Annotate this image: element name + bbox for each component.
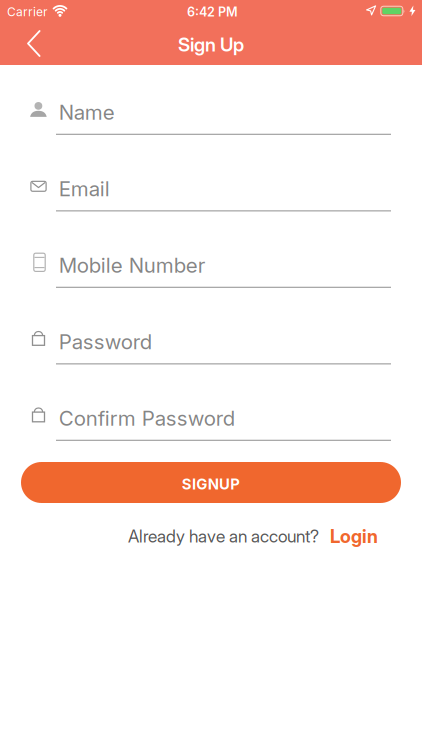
staticText: Carrier [7,4,48,19]
staticText: Email [59,176,110,201]
button[interactable]: SIGNUP [21,462,401,503]
textField[interactable]: Name [0,100,422,135]
textField[interactable]: Password [0,329,422,364]
staticText: Password [59,329,152,354]
staticText: Mobile Number [59,253,206,278]
staticText: Name [59,100,115,125]
staticText: Confirm Password [59,406,235,431]
textField[interactable]: Mobile Number [0,253,422,288]
button[interactable]: Login [330,525,378,547]
staticText: Sign Up [178,33,244,56]
staticText: Already have an account? [128,526,319,547]
textField[interactable]: Confirm Password [0,406,422,441]
staticText: SIGNUP [182,475,240,493]
button[interactable]: Back [0,30,53,57]
staticText: Login [330,525,378,547]
staticText: 6:42 PM [187,4,238,20]
textField[interactable]: Email [0,176,422,211]
